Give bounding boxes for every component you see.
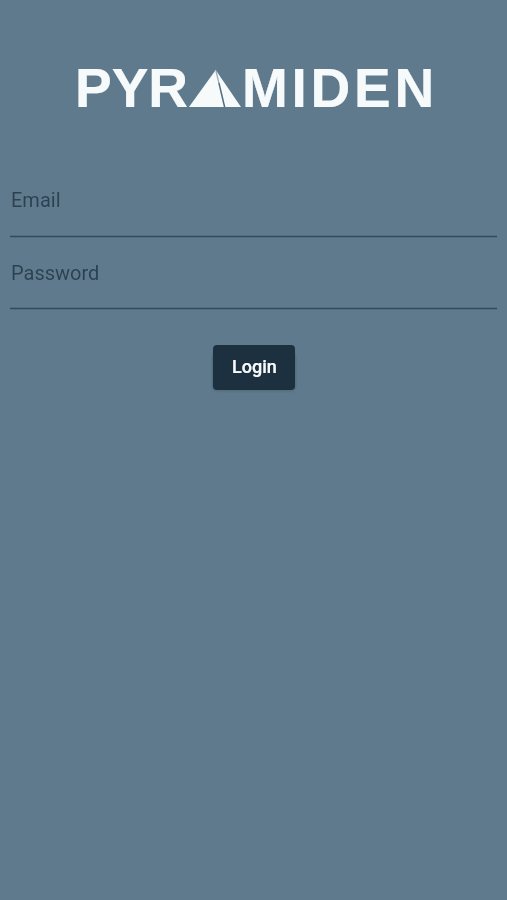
button[interactable]: Login [213,345,295,390]
staticText: Email [11,188,61,211]
staticText: Login [232,356,277,377]
button[interactable]: Password [10,252,497,310]
button[interactable]: Email [10,180,497,238]
other: Pyramiden [70,50,436,112]
staticText: Password [11,261,100,284]
staticText: PYR [75,57,189,118]
staticText: MIDEN [242,57,438,118]
